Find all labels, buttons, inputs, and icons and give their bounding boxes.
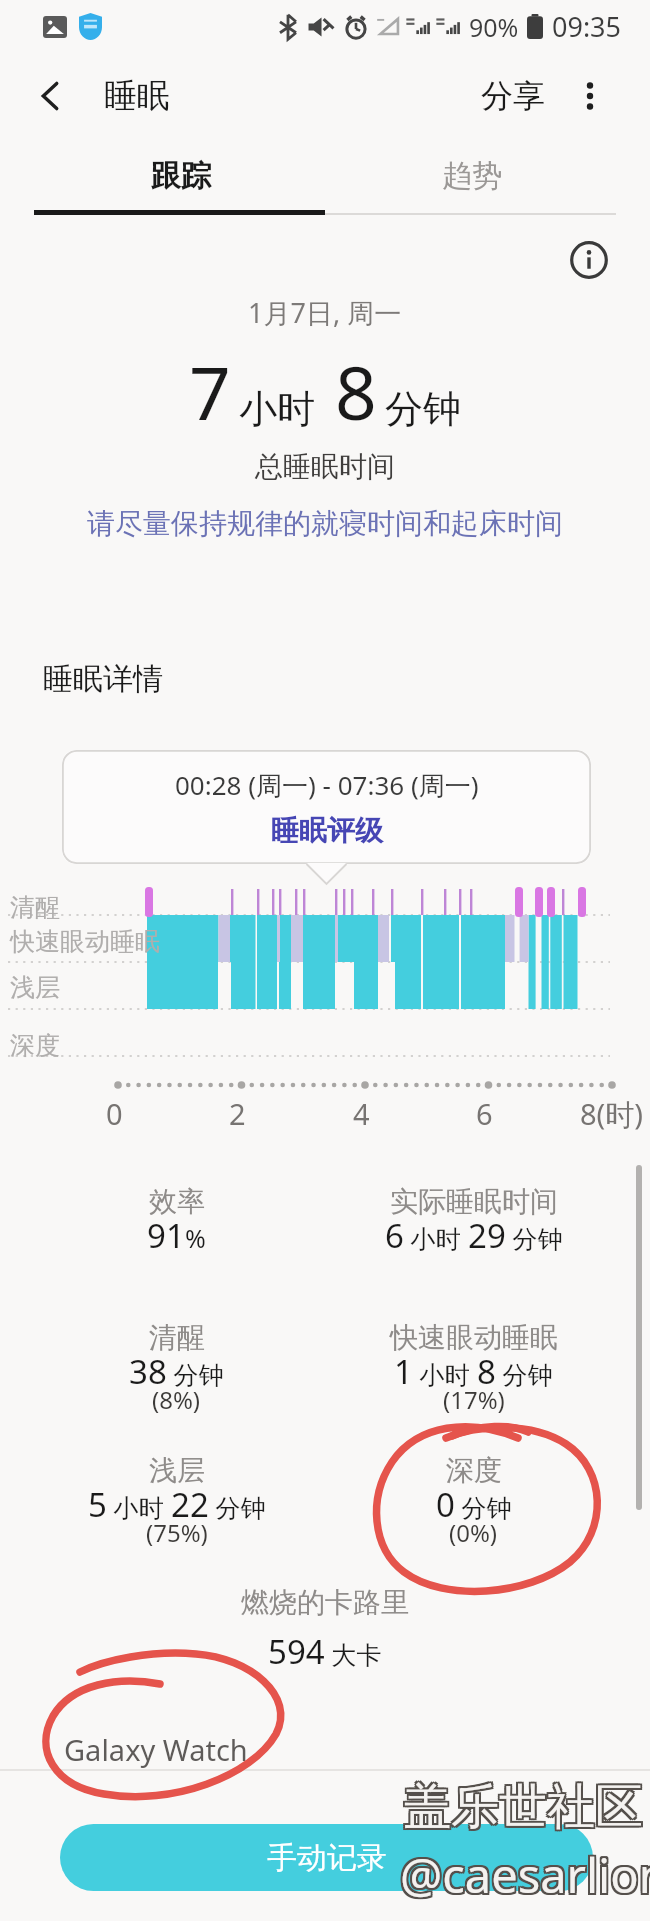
staticText: 小时 [107, 1490, 171, 1524]
staticText: 2 [229, 1094, 246, 1133]
staticText: 效率 [149, 1184, 205, 1219]
staticText: 盖乐世社区 [403, 1775, 643, 1835]
button[interactable]: Info [561, 232, 617, 288]
staticText: Galaxy Watch [64, 1730, 248, 1769]
staticText: 09:35 [552, 8, 622, 45]
staticText: 清醒 [149, 1320, 205, 1355]
staticText: 分钟 [385, 385, 461, 433]
staticText: @caesarlion [400, 1841, 650, 1905]
staticText: 22 [171, 1482, 209, 1527]
staticText: 跟踪 [151, 157, 211, 195]
staticText: (17%) [443, 1383, 505, 1416]
staticText: (8%) [152, 1383, 201, 1416]
staticText: 盖乐世社区 [405, 1779, 645, 1839]
staticText: 盖乐世社区 [405, 1777, 645, 1837]
staticText: @caesarlion [400, 1845, 650, 1909]
staticText: 睡眠评级 [271, 813, 383, 848]
staticText: 快速眼动睡眠 [10, 926, 160, 957]
staticText: @caesarlion [398, 1841, 650, 1905]
staticText: 深度 [446, 1453, 502, 1488]
staticText: @caesarlion [402, 1845, 650, 1909]
staticText: @caesarlion [398, 1845, 650, 1909]
staticText: 分享 [481, 76, 545, 116]
staticText: 手动记录 [267, 1839, 387, 1877]
staticText: 浅层 [10, 972, 60, 1003]
staticText: 90% [469, 10, 519, 44]
staticText: 1月7日, 周一 [248, 294, 402, 331]
staticText: 5 [88, 1482, 107, 1527]
staticText: 29 [468, 1213, 506, 1258]
button[interactable]: 趋势 [326, 140, 618, 212]
staticText: 91 [147, 1213, 185, 1258]
staticText: 38 [129, 1349, 167, 1394]
staticText: @caesarlion [402, 1841, 650, 1905]
staticText: 分钟 [167, 1357, 224, 1391]
staticText: 594 [268, 1629, 325, 1674]
button[interactable]: 手动记录 [60, 1824, 593, 1891]
staticText: 燃烧的卡路里 [241, 1585, 409, 1620]
staticText: 6 [385, 1213, 404, 1258]
staticText: 盖乐世社区 [405, 1775, 645, 1835]
staticText: 8 [477, 1349, 496, 1394]
staticText: 7 [189, 342, 231, 441]
staticText: 趋势 [442, 157, 502, 195]
staticText: 盖乐世社区 [403, 1777, 643, 1837]
staticText: 1 [394, 1349, 413, 1394]
staticText: 小时 [239, 385, 315, 433]
staticText: % [185, 1221, 206, 1255]
staticText: 00:28 (周一) - 07:36 (周一) [175, 767, 479, 803]
button[interactable]: 分享 [460, 64, 552, 128]
staticText: 分钟 [506, 1221, 563, 1255]
staticText: 实际睡眠时间 [390, 1184, 558, 1219]
staticText: 分钟 [209, 1490, 266, 1524]
staticText: 小时 [404, 1221, 468, 1255]
staticText: 盖乐世社区 [403, 1779, 643, 1839]
staticText: 0 [106, 1094, 123, 1133]
staticText: 清醒 [10, 892, 60, 923]
staticText: 深度 [10, 1030, 60, 1061]
staticText: @caesarlion [402, 1843, 650, 1907]
staticText: 4 [353, 1094, 370, 1133]
staticText: 快速眼动睡眠 [390, 1320, 558, 1355]
staticText: 睡眠详情 [43, 660, 163, 698]
staticText: 小时 [413, 1357, 477, 1391]
button[interactable]: More options [559, 65, 621, 127]
staticText: 8 [335, 342, 377, 441]
staticText: (0%) [449, 1516, 498, 1549]
staticText: @caesarlion [400, 1843, 650, 1907]
staticText: 分钟 [455, 1490, 512, 1524]
staticText: 0 [436, 1482, 455, 1527]
button[interactable]: 00:28 (周一) - 07:36 (周一) [62, 750, 591, 864]
staticText: (75%) [146, 1516, 208, 1549]
staticText: 请尽量保持规律的就寝时间和起床时间 [87, 506, 563, 541]
staticText: 8(时) [580, 1094, 643, 1134]
staticText: 睡眠 [104, 75, 170, 117]
staticText: 总睡眠时间 [255, 449, 395, 484]
staticText: 大卡 [325, 1637, 382, 1671]
staticText: 盖乐世社区 [401, 1775, 641, 1835]
staticText: @caesarlion [398, 1843, 650, 1907]
staticText: 分钟 [496, 1357, 553, 1391]
staticText: 6 [476, 1094, 493, 1133]
button[interactable]: 跟踪 [35, 140, 326, 212]
staticText: 盖乐世社区 [401, 1777, 641, 1837]
staticText: 盖乐世社区 [401, 1779, 641, 1839]
button[interactable]: Back [12, 58, 88, 134]
staticText: 浅层 [149, 1453, 205, 1488]
